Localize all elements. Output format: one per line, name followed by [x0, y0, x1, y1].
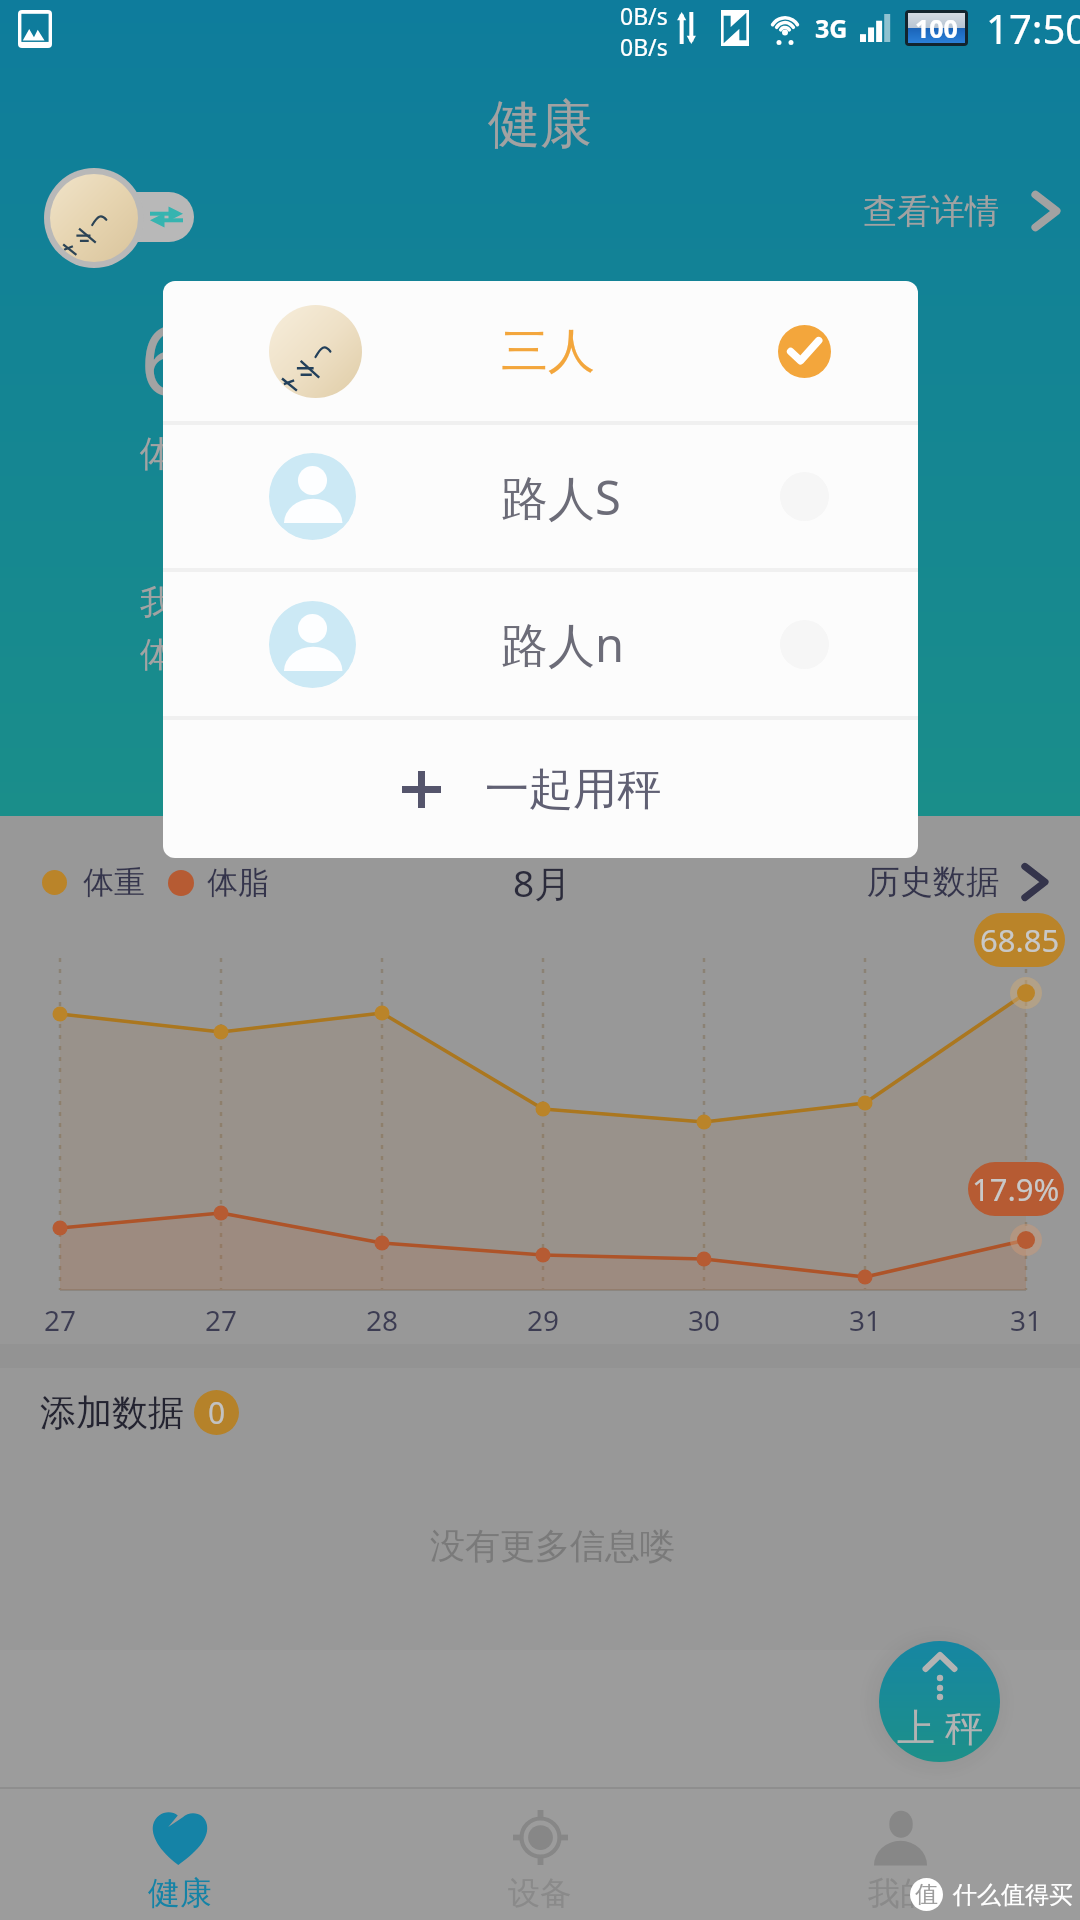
button[interactable]: 路人S — [163, 425, 918, 568]
button[interactable]: 查看详情 — [863, 187, 1069, 235]
staticText: 查看详情 — [863, 190, 999, 233]
button[interactable]: Switch user — [98, 192, 194, 242]
button[interactable]: 设备 — [360, 1789, 720, 1920]
staticText: 体脂 — [207, 863, 269, 902]
staticText: 27 — [205, 1301, 238, 1339]
staticText: 体重（kg） — [140, 428, 326, 477]
staticText: 健康 — [148, 1873, 212, 1913]
staticText: 68.85 — [140, 292, 386, 423]
staticText: 一起用秤 — [485, 762, 661, 817]
staticText: 体脂率 17.9% BMI 22.4 — [140, 630, 523, 676]
staticText: 我的 — [868, 1873, 932, 1913]
button[interactable]: Account avatar — [50, 174, 138, 262]
button[interactable]: 健康 — [0, 1789, 360, 1920]
staticText: 上 秤 — [897, 1700, 983, 1752]
staticText: 健康 — [488, 92, 592, 158]
staticText: 17:50 — [986, 1, 1080, 55]
button[interactable]: 一起用秤 — [163, 720, 918, 858]
staticText: 体重 — [83, 863, 145, 902]
staticText: 值 — [915, 1880, 938, 1909]
staticText: 什么值得买 — [953, 1880, 1073, 1910]
button[interactable]: 路人n — [163, 572, 918, 716]
staticText: 31 — [1010, 1301, 1043, 1339]
staticText: 28 — [366, 1301, 399, 1339]
staticText: 没有更多信息喽 — [430, 1524, 675, 1568]
staticText: 三人 — [501, 322, 595, 381]
staticText: 路人n — [501, 612, 625, 676]
button[interactable]: 我的 — [720, 1789, 1080, 1920]
staticText: 17.9% — [972, 1168, 1060, 1210]
button[interactable]: 上 秤 — [879, 1641, 1000, 1762]
staticText: 添加数据 — [40, 1390, 184, 1435]
staticText: 8月 — [513, 857, 572, 908]
staticText: 31 — [849, 1301, 882, 1339]
staticText: 100 — [915, 11, 958, 45]
other: Screenshot — [18, 10, 52, 48]
staticText: 0B/s — [620, 0, 668, 31]
staticText: 30 — [688, 1301, 721, 1339]
staticText: 0B/s — [620, 31, 668, 56]
button[interactable]: 三人 — [163, 281, 918, 421]
staticText: 68.85 — [980, 919, 1060, 961]
staticText: 我的目标体重 60kg 距离目标还需要 3 周 — [140, 578, 776, 624]
button[interactable]: 历史数据 — [867, 859, 1057, 905]
staticText: 历史数据 — [867, 861, 999, 903]
staticText: 3G — [815, 11, 848, 45]
staticText: 设备 — [508, 1873, 572, 1913]
staticText: 0 — [208, 1392, 226, 1433]
staticText: 27 — [44, 1301, 77, 1339]
staticText: 29 — [527, 1301, 560, 1339]
staticText: 路人S — [501, 465, 621, 529]
button[interactable]: 添加数据 — [0, 1368, 1080, 1456]
